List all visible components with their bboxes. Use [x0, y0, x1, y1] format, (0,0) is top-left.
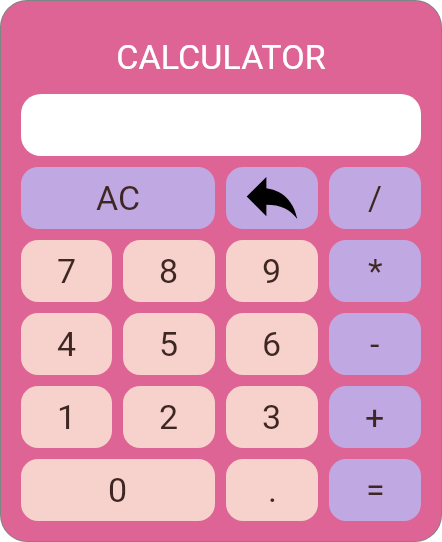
button[interactable]: Backspace	[226, 167, 318, 229]
staticText: /	[368, 178, 383, 218]
staticText: 6	[262, 324, 282, 364]
staticText: +	[365, 397, 385, 437]
button[interactable]: 8	[123, 240, 215, 302]
staticText: 7	[57, 251, 77, 291]
staticText: .	[268, 470, 277, 510]
button[interactable]: =	[329, 459, 421, 521]
staticText: 0	[108, 470, 128, 510]
staticText: =	[366, 470, 385, 510]
staticText: CALCULATOR	[116, 37, 326, 77]
staticText: 5	[159, 324, 179, 364]
staticText: 8	[159, 251, 179, 291]
button[interactable]: +	[329, 386, 421, 448]
button[interactable]: 3	[226, 386, 318, 448]
button[interactable]: .	[226, 459, 318, 521]
button[interactable]: *	[329, 240, 421, 302]
button[interactable]: 7	[21, 240, 112, 302]
staticText: 3	[262, 397, 282, 437]
button[interactable]: 2	[123, 386, 215, 448]
button[interactable]: 5	[123, 313, 215, 375]
button[interactable]: 9	[226, 240, 318, 302]
button[interactable]: AC	[21, 167, 215, 229]
button[interactable]: 0	[21, 459, 215, 521]
staticText: 4	[57, 324, 77, 364]
button[interactable]: /	[329, 167, 421, 229]
button[interactable]: 6	[226, 313, 318, 375]
button[interactable]: -	[329, 313, 421, 375]
staticText: 9	[262, 251, 282, 291]
button[interactable]: 4	[21, 313, 112, 375]
staticText: *	[368, 251, 383, 291]
staticText: -	[370, 324, 380, 364]
button[interactable]: 1	[21, 386, 112, 448]
staticText: 2	[159, 397, 179, 437]
staticText: AC	[96, 178, 141, 218]
staticText: 1	[57, 397, 77, 437]
